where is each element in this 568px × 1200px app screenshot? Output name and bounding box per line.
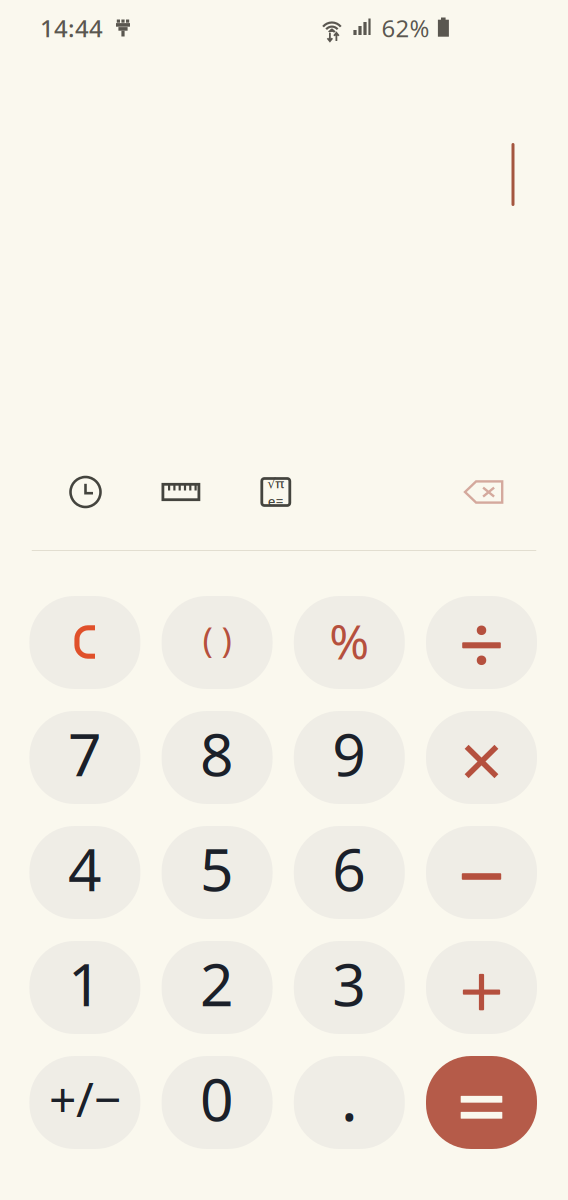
staticText: 5 (200, 829, 234, 907)
button[interactable]: 8 (162, 711, 273, 804)
button[interactable]: Formulas (262, 478, 290, 505)
staticText: 7 (68, 714, 102, 792)
button[interactable] (29, 596, 140, 689)
button[interactable]: +/− (29, 1056, 140, 1149)
staticText: 4 (68, 829, 102, 907)
button[interactable] (426, 1056, 537, 1149)
staticText: 0 (200, 1059, 234, 1137)
button[interactable]: Unit converter (161, 483, 200, 501)
staticText: % (329, 609, 369, 673)
button[interactable]: 7 (29, 711, 140, 804)
button[interactable] (426, 596, 537, 689)
button[interactable] (426, 826, 537, 919)
staticText: ( ) (203, 616, 232, 662)
staticText: 1 (68, 944, 102, 1022)
staticText: 8 (200, 714, 234, 792)
staticText: 3 (332, 944, 366, 1022)
button[interactable]: ( ) (162, 596, 273, 689)
button[interactable]: 2 (162, 941, 273, 1034)
button[interactable] (426, 711, 537, 804)
button[interactable]: 0 (162, 1056, 273, 1149)
button[interactable]: % (294, 596, 405, 689)
staticText: 2 (200, 944, 234, 1022)
staticText: 14:44 (40, 12, 103, 44)
button[interactable]: 6 (294, 826, 405, 919)
staticText: 6 (332, 829, 366, 907)
button[interactable]: 5 (162, 826, 273, 919)
button[interactable]: 9 (294, 711, 405, 804)
staticText: e= (268, 492, 284, 510)
button[interactable] (426, 941, 537, 1034)
button[interactable]: . (294, 1056, 405, 1149)
staticText: . (341, 1054, 358, 1139)
button[interactable]: Delete (464, 480, 504, 504)
staticText: √π (267, 474, 284, 492)
button[interactable]: History (70, 476, 101, 507)
staticText: +/− (49, 1067, 121, 1130)
staticText: 9 (332, 714, 366, 792)
staticText: 62% (381, 12, 429, 44)
button[interactable]: 4 (29, 826, 140, 919)
button[interactable]: 1 (29, 941, 140, 1034)
button[interactable]: 3 (294, 941, 405, 1034)
